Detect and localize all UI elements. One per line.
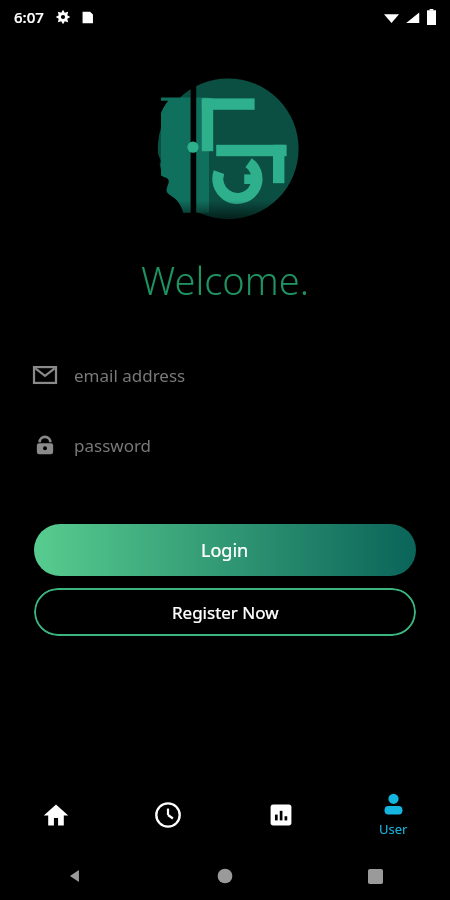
staticText: User <box>379 820 408 838</box>
button[interactable]: Back <box>0 852 150 900</box>
button[interactable]: Register Now <box>34 588 416 636</box>
button[interactable]: User <box>337 778 450 852</box>
button[interactable]: Home <box>0 778 112 852</box>
button[interactable]: Home <box>150 852 300 900</box>
button[interactable]: Stats <box>224 778 337 852</box>
staticText: Login <box>201 538 249 563</box>
staticText: password <box>74 434 152 457</box>
staticText: email address <box>74 364 186 387</box>
button[interactable]: History <box>112 778 224 852</box>
button[interactable]: Recents <box>300 852 450 900</box>
staticText: 6:07 <box>14 7 44 27</box>
staticText: Register Now <box>172 601 279 624</box>
button[interactable]: email address <box>0 354 450 396</box>
button[interactable]: Login <box>34 524 416 576</box>
staticText: Welcome. <box>141 254 309 306</box>
button[interactable]: password <box>0 424 450 466</box>
